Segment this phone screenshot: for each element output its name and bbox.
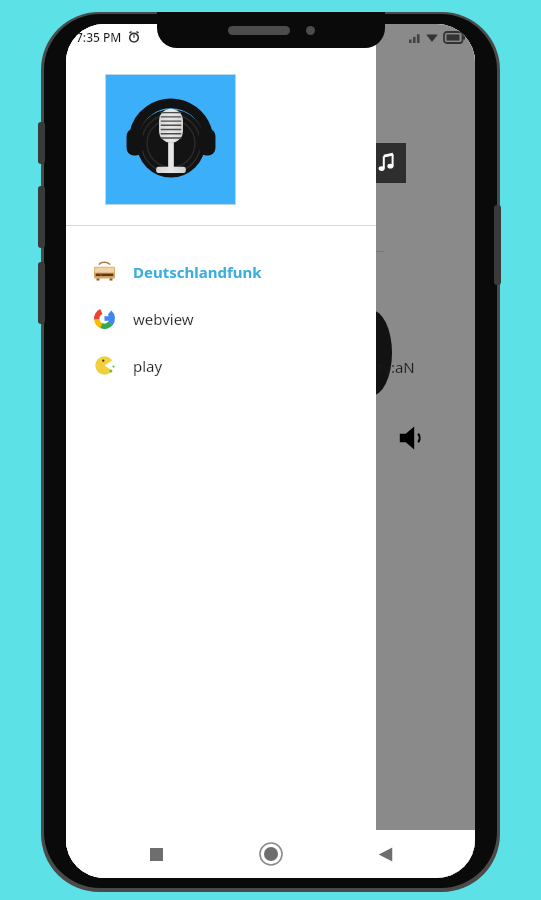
staticText: play bbox=[133, 356, 163, 376]
button[interactable] bbox=[106, 75, 235, 204]
button[interactable]: Deutschlandfunk bbox=[66, 248, 376, 295]
button[interactable]: Volume bbox=[396, 421, 430, 455]
staticText: ity:aN bbox=[374, 357, 415, 377]
button[interactable]: play bbox=[66, 342, 376, 389]
button[interactable]: webview bbox=[66, 295, 376, 342]
staticText: 7:35 PM bbox=[76, 29, 122, 45]
button[interactable]: Recents bbox=[132, 830, 180, 878]
staticText: Deutschlandfunk bbox=[133, 262, 262, 282]
button[interactable]: Back bbox=[361, 830, 409, 878]
button[interactable]: Home bbox=[247, 830, 295, 878]
staticText: webview bbox=[133, 309, 194, 329]
